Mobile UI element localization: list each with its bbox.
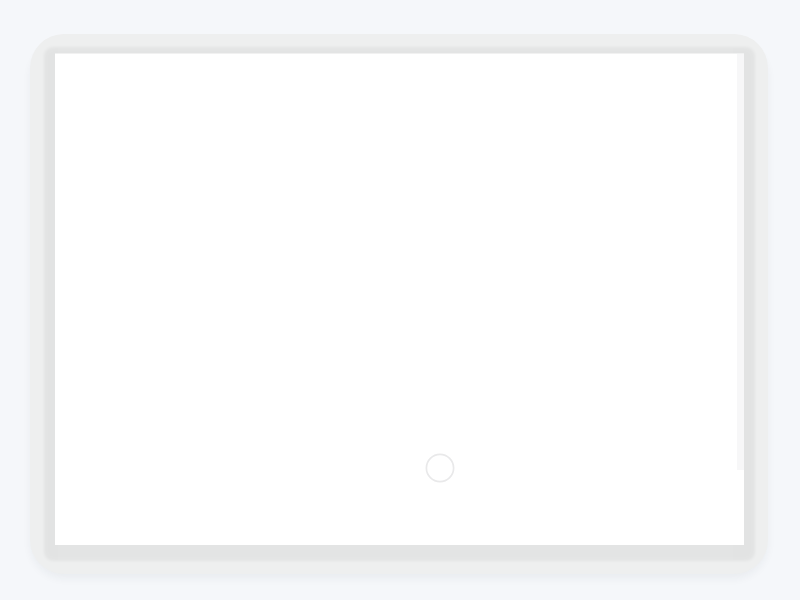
button[interactable]: Loading bbox=[424, 452, 456, 484]
